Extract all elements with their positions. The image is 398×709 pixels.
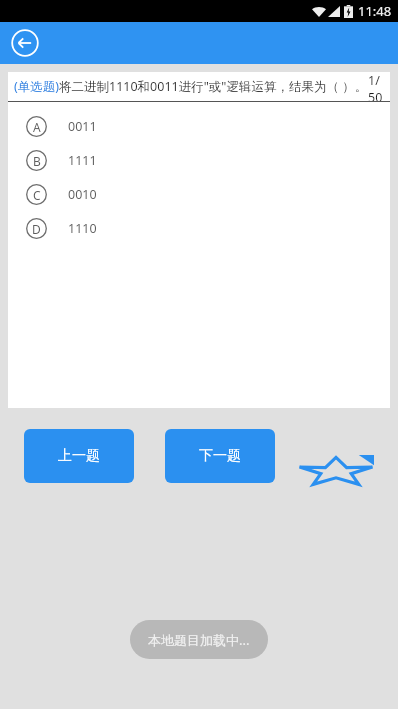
button[interactable]: 下一题 bbox=[165, 429, 275, 483]
button[interactable]: D bbox=[8, 211, 390, 245]
staticText: 0010 bbox=[68, 186, 97, 203]
staticText: 1110 bbox=[68, 220, 97, 237]
staticText: A bbox=[33, 119, 41, 135]
staticText: 11:48 bbox=[358, 2, 392, 20]
staticText: 下一题 bbox=[199, 447, 241, 465]
button[interactable]: B bbox=[8, 143, 390, 177]
staticText: D bbox=[32, 221, 41, 237]
staticText: 1111 bbox=[68, 152, 97, 169]
staticText: 0011 bbox=[68, 118, 97, 135]
button[interactable]: Back bbox=[10, 28, 40, 58]
staticText: 上一题 bbox=[58, 447, 100, 465]
button[interactable]: C bbox=[8, 177, 390, 211]
staticText: (单选题)将二进制1110和0011进行"或"逻辑运算，结果为（ ）。 bbox=[14, 78, 368, 95]
staticText: C bbox=[33, 187, 41, 203]
staticText: B bbox=[33, 153, 41, 169]
staticText: 本地题目加载中... bbox=[148, 631, 250, 649]
button[interactable]: A bbox=[8, 109, 390, 143]
button[interactable]: 上一题 bbox=[24, 429, 134, 483]
button[interactable]: 本地题目加载中... bbox=[130, 620, 268, 659]
staticText: 1/50 bbox=[368, 72, 384, 101]
other: Logo bbox=[298, 455, 374, 485]
